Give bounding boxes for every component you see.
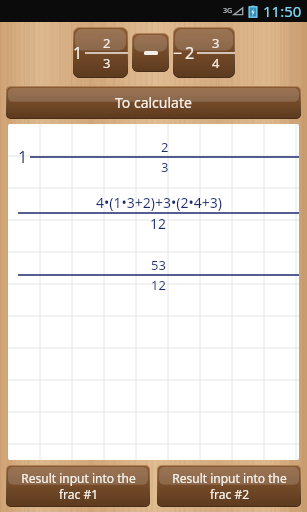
button[interactable]: To calculate [6,86,301,119]
staticText: 3G [223,6,233,16]
staticText: 2 [185,42,195,64]
staticText: Result input into the frac #1 [21,470,136,502]
staticText: 4 [212,54,220,72]
staticText: 2 [103,34,111,52]
staticText: 2 [161,138,169,156]
button[interactable]: Result input into the frac #1 [6,465,150,507]
staticText: Result input into the frac #2 [172,470,287,502]
button[interactable]: − [173,27,235,78]
staticText: 1 [18,146,28,168]
button[interactable]: 1 [73,27,128,78]
staticText: 3 [212,34,220,52]
button[interactable]: Result input into the frac #2 [157,465,301,507]
staticText: 3 [103,54,111,72]
staticText: 3 [161,158,169,176]
button[interactable]: Minus operator [132,33,169,72]
staticText: 11:50 [263,1,302,21]
staticText: To calculate [115,93,192,112]
staticText: 53 [151,256,166,274]
staticText: − [173,42,183,64]
staticText: 1 [73,42,83,64]
staticText: 12 [151,276,166,294]
staticText: 12 [150,214,167,233]
staticText: 4•(1•3+2)+3•(2•4+3) [96,193,222,212]
